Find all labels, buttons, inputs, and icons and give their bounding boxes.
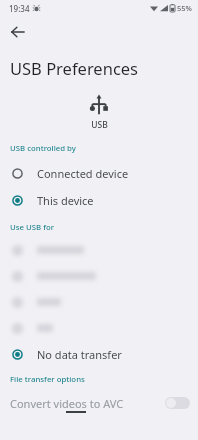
staticText: Connected device	[37, 166, 129, 181]
button[interactable]	[0, 263, 198, 289]
button[interactable]: This device	[0, 187, 198, 214]
staticText: Use USB for	[10, 222, 55, 233]
button[interactable]: No data transfer	[0, 341, 198, 368]
staticText: 19:34	[9, 3, 30, 14]
button[interactable]	[0, 237, 198, 263]
button[interactable]: Back	[4, 18, 32, 46]
staticText: Convert videos to AVC	[10, 396, 124, 411]
button[interactable]	[0, 289, 198, 315]
staticText: USB controlled by	[10, 143, 76, 154]
staticText: This device	[37, 193, 94, 208]
staticText: USB Preferences	[10, 57, 139, 79]
button[interactable]	[0, 315, 198, 341]
button[interactable]: Convert videos to AVC	[0, 389, 198, 417]
staticText: 55%	[177, 3, 192, 13]
staticText: USB	[91, 119, 108, 131]
staticText: No data transfer	[37, 347, 122, 362]
staticText: File transfer options	[10, 374, 85, 385]
button[interactable]: Connected device	[0, 160, 198, 187]
